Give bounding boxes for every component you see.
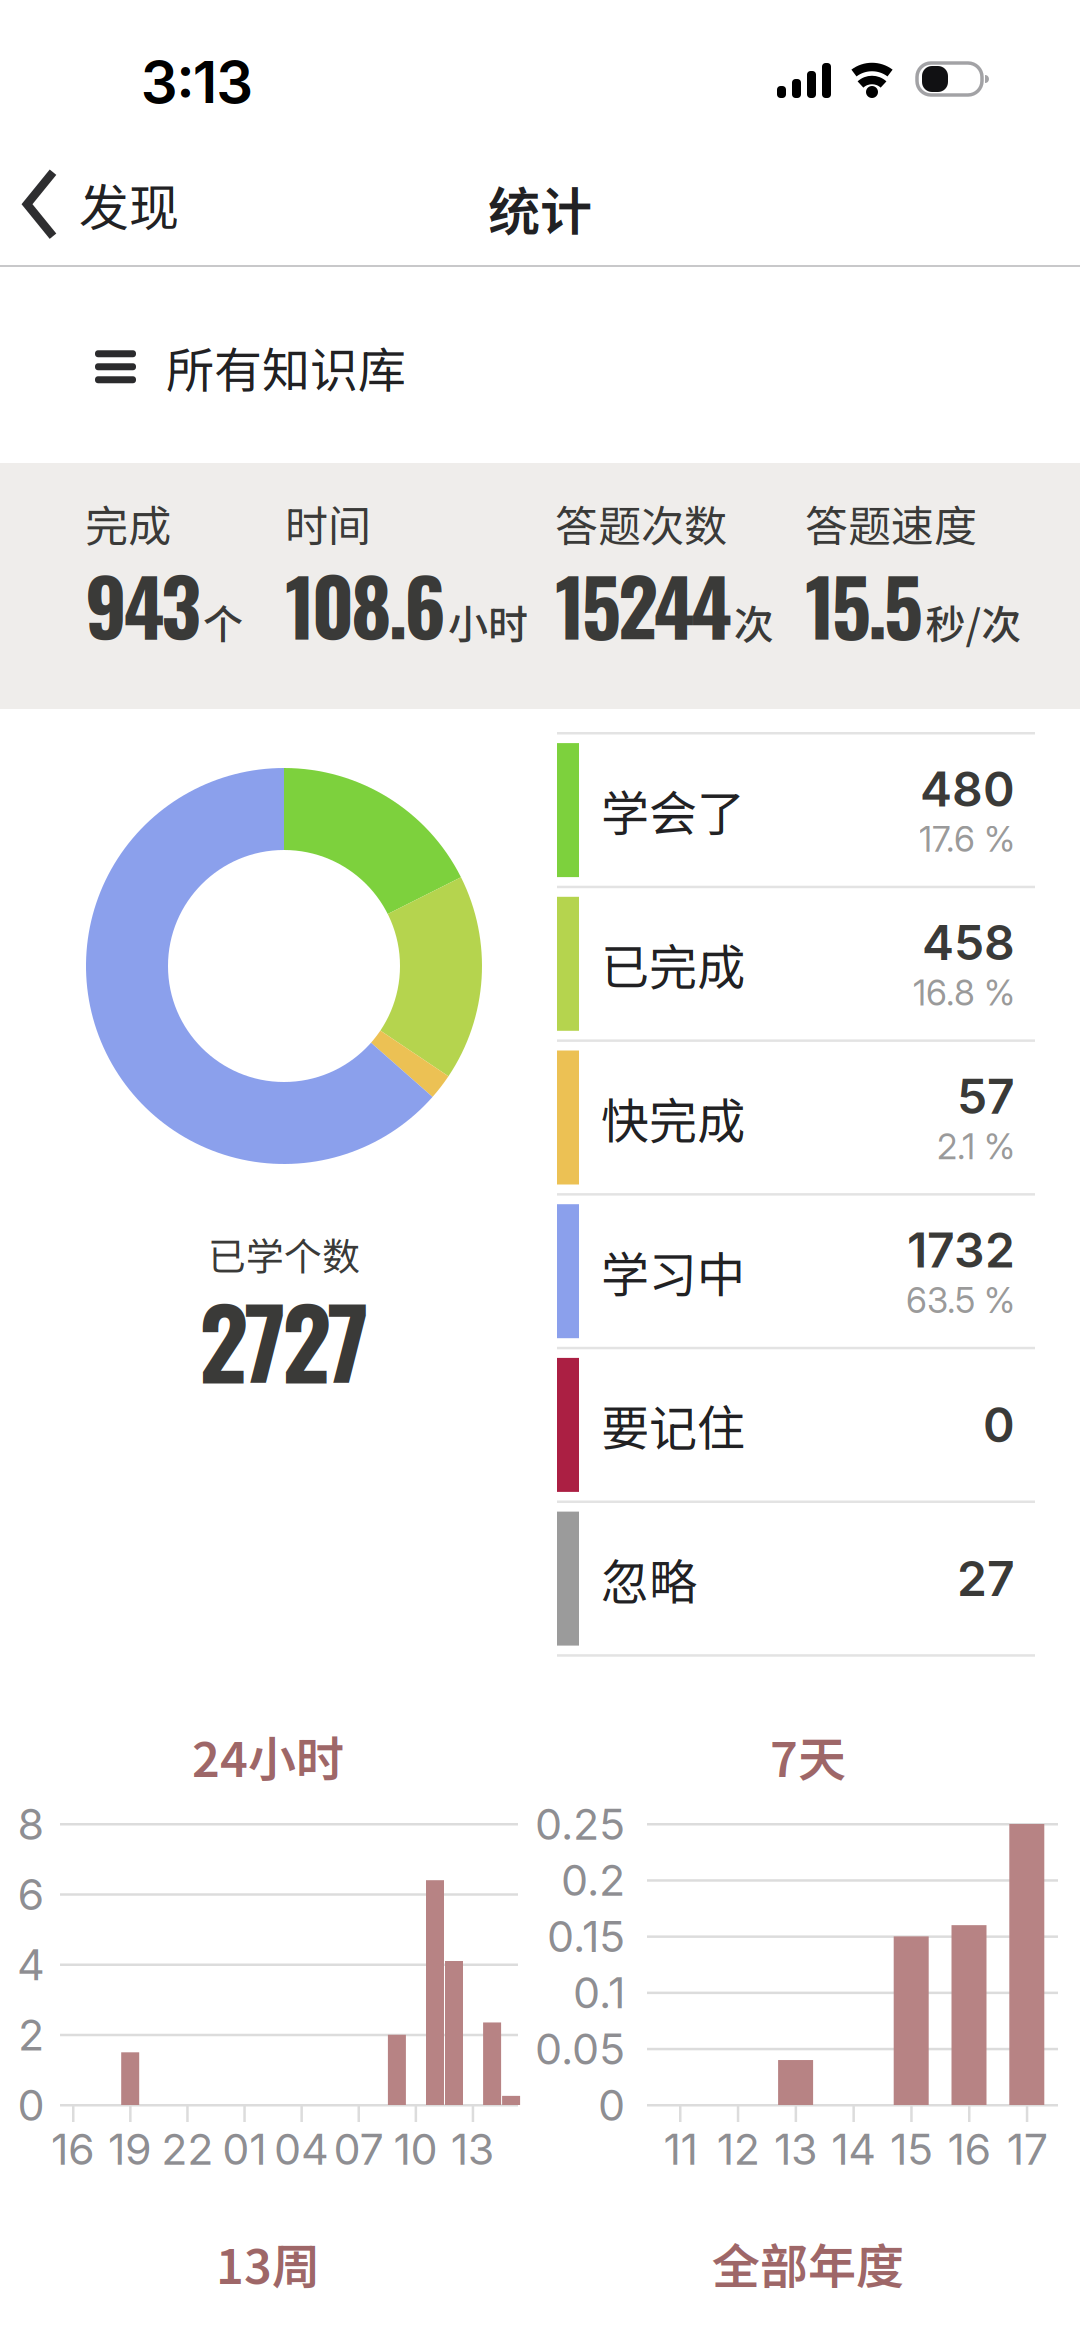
staticText: 24小时	[192, 1721, 344, 1791]
staticText: 0.15	[547, 1910, 625, 1962]
staticText: 0.2	[561, 1854, 625, 1906]
staticText: 学会了	[601, 775, 745, 845]
staticText: 发现	[79, 168, 179, 240]
staticText: 13	[774, 2123, 818, 2175]
staticText: 15.5	[805, 546, 923, 662]
staticText: 17	[1007, 2123, 1048, 2175]
staticText: 2	[18, 2009, 44, 2061]
staticText: 0	[598, 2079, 625, 2131]
staticText: 7天	[770, 1721, 846, 1791]
staticText: 次	[734, 593, 774, 651]
staticText: 15244	[555, 546, 732, 662]
staticText: 3:13	[141, 47, 253, 117]
staticText: 13	[451, 2123, 495, 2175]
staticText: 63.5 %	[906, 1279, 1015, 1321]
staticText: 108.6	[285, 546, 446, 662]
staticText: 0.05	[535, 2023, 625, 2075]
staticText: 0.1	[573, 1967, 625, 2019]
button[interactable]: 发现	[0, 168, 189, 240]
staticText: 11	[663, 2123, 697, 2175]
staticText: 答题速度	[805, 492, 977, 554]
staticText: 忽略	[601, 1544, 697, 1613]
staticText: 480	[920, 760, 1015, 818]
staticText: 0	[17, 2079, 44, 2131]
staticText: 全部年度	[712, 2228, 904, 2298]
staticText: 2727	[199, 1269, 369, 1411]
staticText: 个	[203, 593, 243, 651]
staticText: 13周	[216, 2228, 320, 2298]
staticText: 答题次数	[555, 492, 727, 554]
staticText: 27	[957, 1550, 1015, 1608]
staticText: 07	[333, 2123, 383, 2175]
staticText: 已完成	[601, 929, 745, 998]
staticText: 17.6 %	[919, 818, 1015, 860]
staticText: 16.8 %	[913, 972, 1015, 1014]
staticText: 12	[717, 2123, 760, 2175]
staticText: 完成	[85, 492, 171, 554]
staticText: 学习中	[601, 1236, 745, 1306]
staticText: 8	[17, 1798, 44, 1850]
staticText: 943	[85, 546, 201, 662]
staticText: 0.25	[535, 1798, 625, 1850]
staticText: 6	[17, 1868, 44, 1920]
staticText: 1732	[907, 1221, 1015, 1279]
staticText: 统计	[488, 170, 592, 246]
staticText: 458	[922, 914, 1015, 972]
staticText: 01	[222, 2123, 266, 2175]
staticText: 16	[947, 2123, 991, 2175]
staticText: 4	[17, 1938, 45, 1990]
staticText: 0	[983, 1396, 1015, 1454]
staticText: 57	[957, 1067, 1015, 1125]
staticText: 所有知识库	[166, 332, 406, 401]
staticText: 已学个数	[208, 1226, 360, 1281]
staticText: 19	[108, 2123, 152, 2175]
staticText: 22	[161, 2123, 213, 2175]
staticText: 要记住	[601, 1390, 745, 1460]
staticText: 14	[831, 2123, 876, 2175]
staticText: 秒/次	[925, 593, 1021, 651]
staticText: 04	[274, 2123, 329, 2175]
staticText: 2.1 %	[937, 1125, 1015, 1168]
button[interactable]: 所有知识库	[0, 318, 406, 415]
staticText: 10	[394, 2123, 438, 2175]
staticText: 16	[51, 2123, 95, 2175]
staticText: 快完成	[601, 1083, 745, 1152]
staticText: 时间	[285, 492, 371, 554]
staticText: 15	[890, 2123, 933, 2175]
staticText: 小时	[448, 593, 528, 651]
